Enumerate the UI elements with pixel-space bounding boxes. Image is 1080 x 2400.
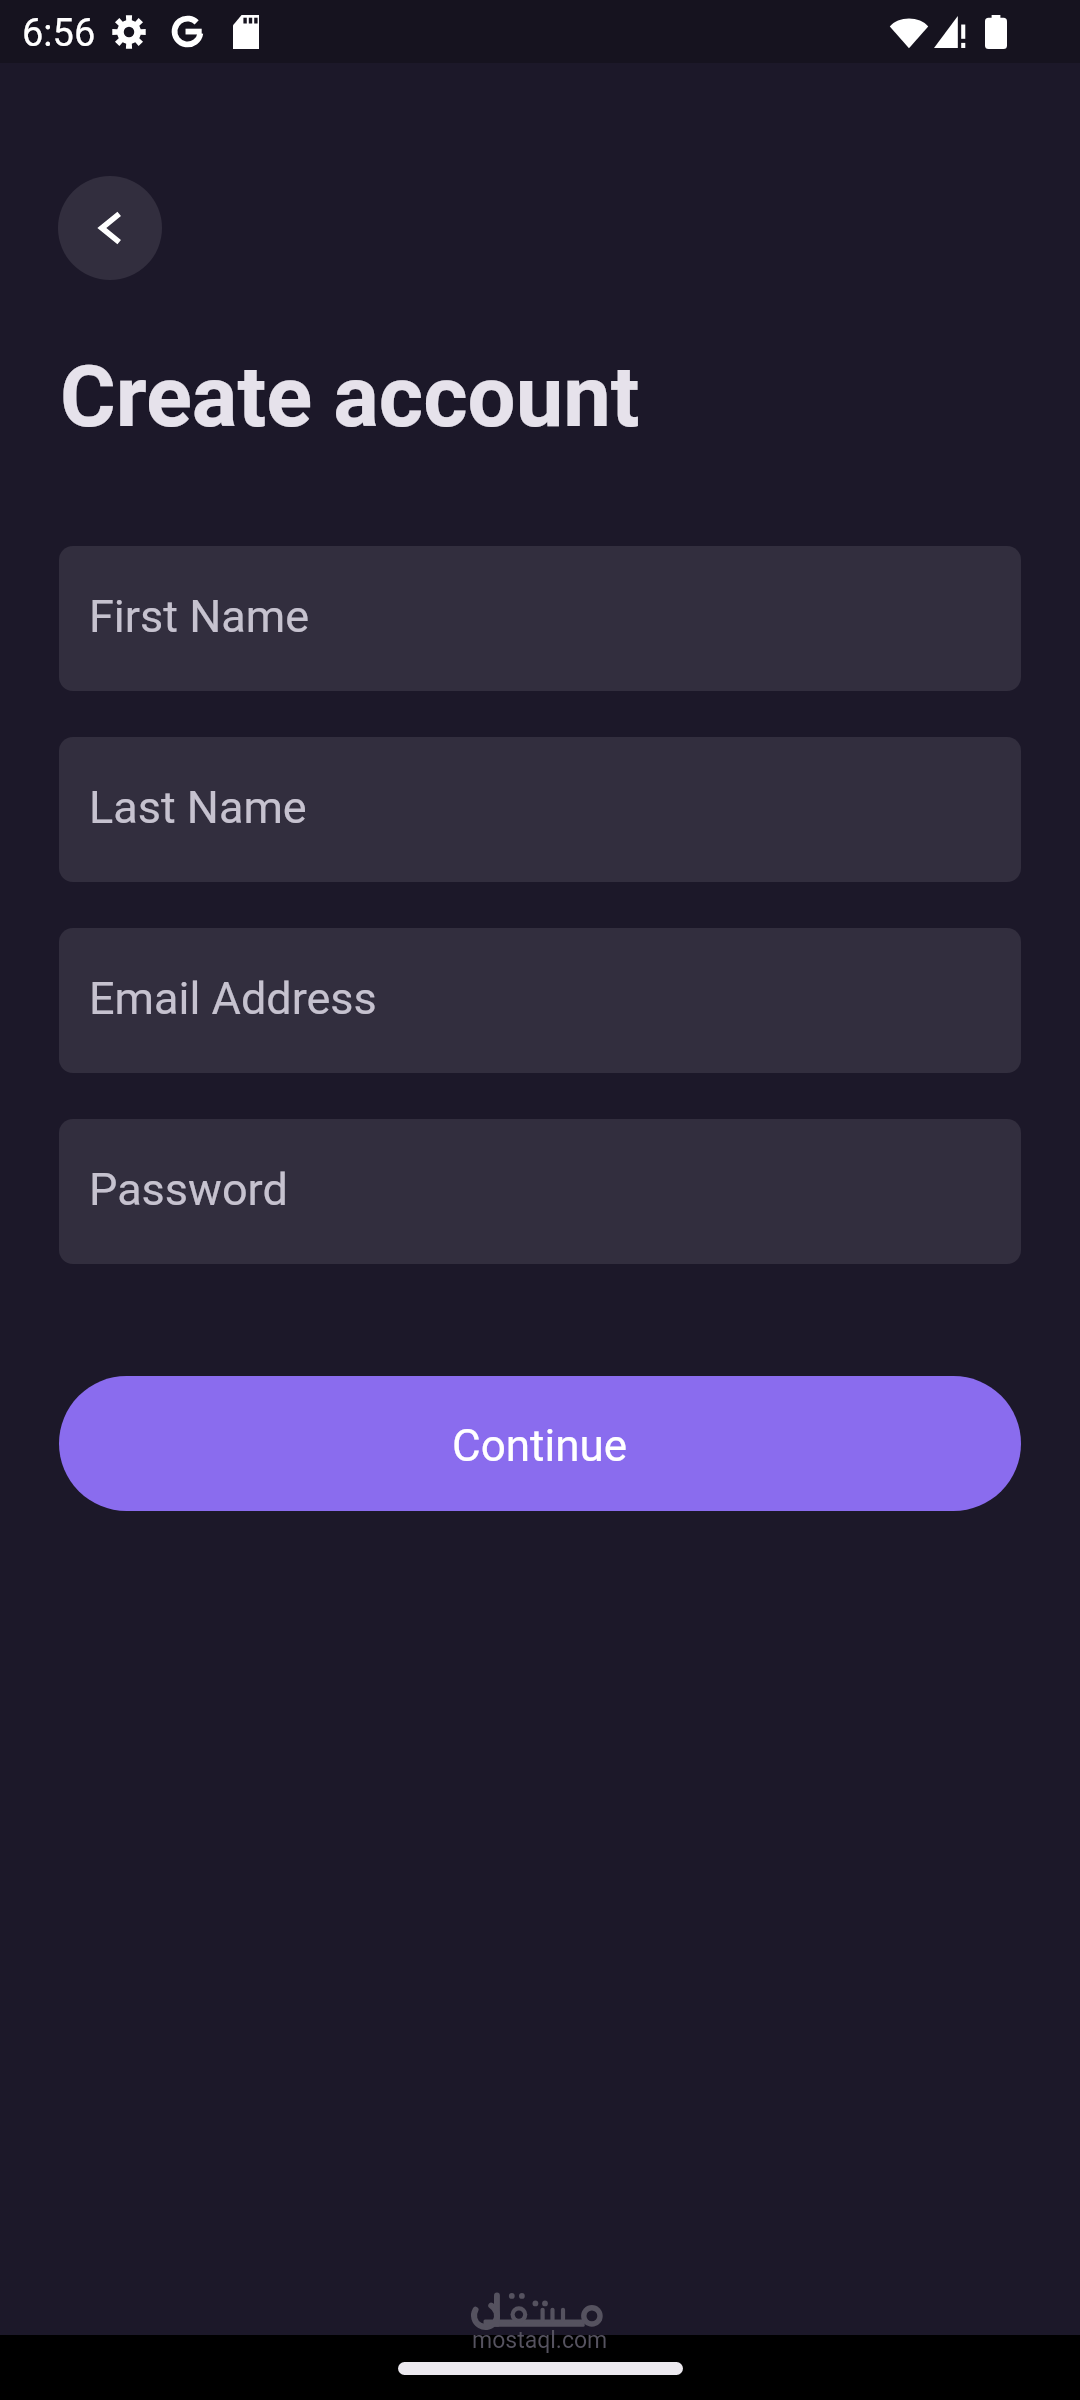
button[interactable]: Last Name: [59, 737, 1021, 882]
button[interactable]: Password: [59, 1119, 1021, 1264]
button[interactable]: Continue: [59, 1376, 1021, 1511]
button[interactable]: Email Address: [59, 928, 1021, 1073]
staticText: First Name: [89, 590, 310, 643]
staticText: Email Address: [89, 972, 377, 1025]
staticText: Create account: [60, 347, 640, 447]
staticText: mostaql.com: [472, 2327, 608, 2354]
button[interactable]: Back: [58, 176, 162, 280]
staticText: Continue: [452, 1420, 628, 1472]
button[interactable]: First Name: [59, 546, 1021, 691]
staticText: Password: [89, 1163, 288, 1216]
staticText: 6:56: [22, 11, 96, 56]
staticText: Last Name: [89, 781, 307, 834]
